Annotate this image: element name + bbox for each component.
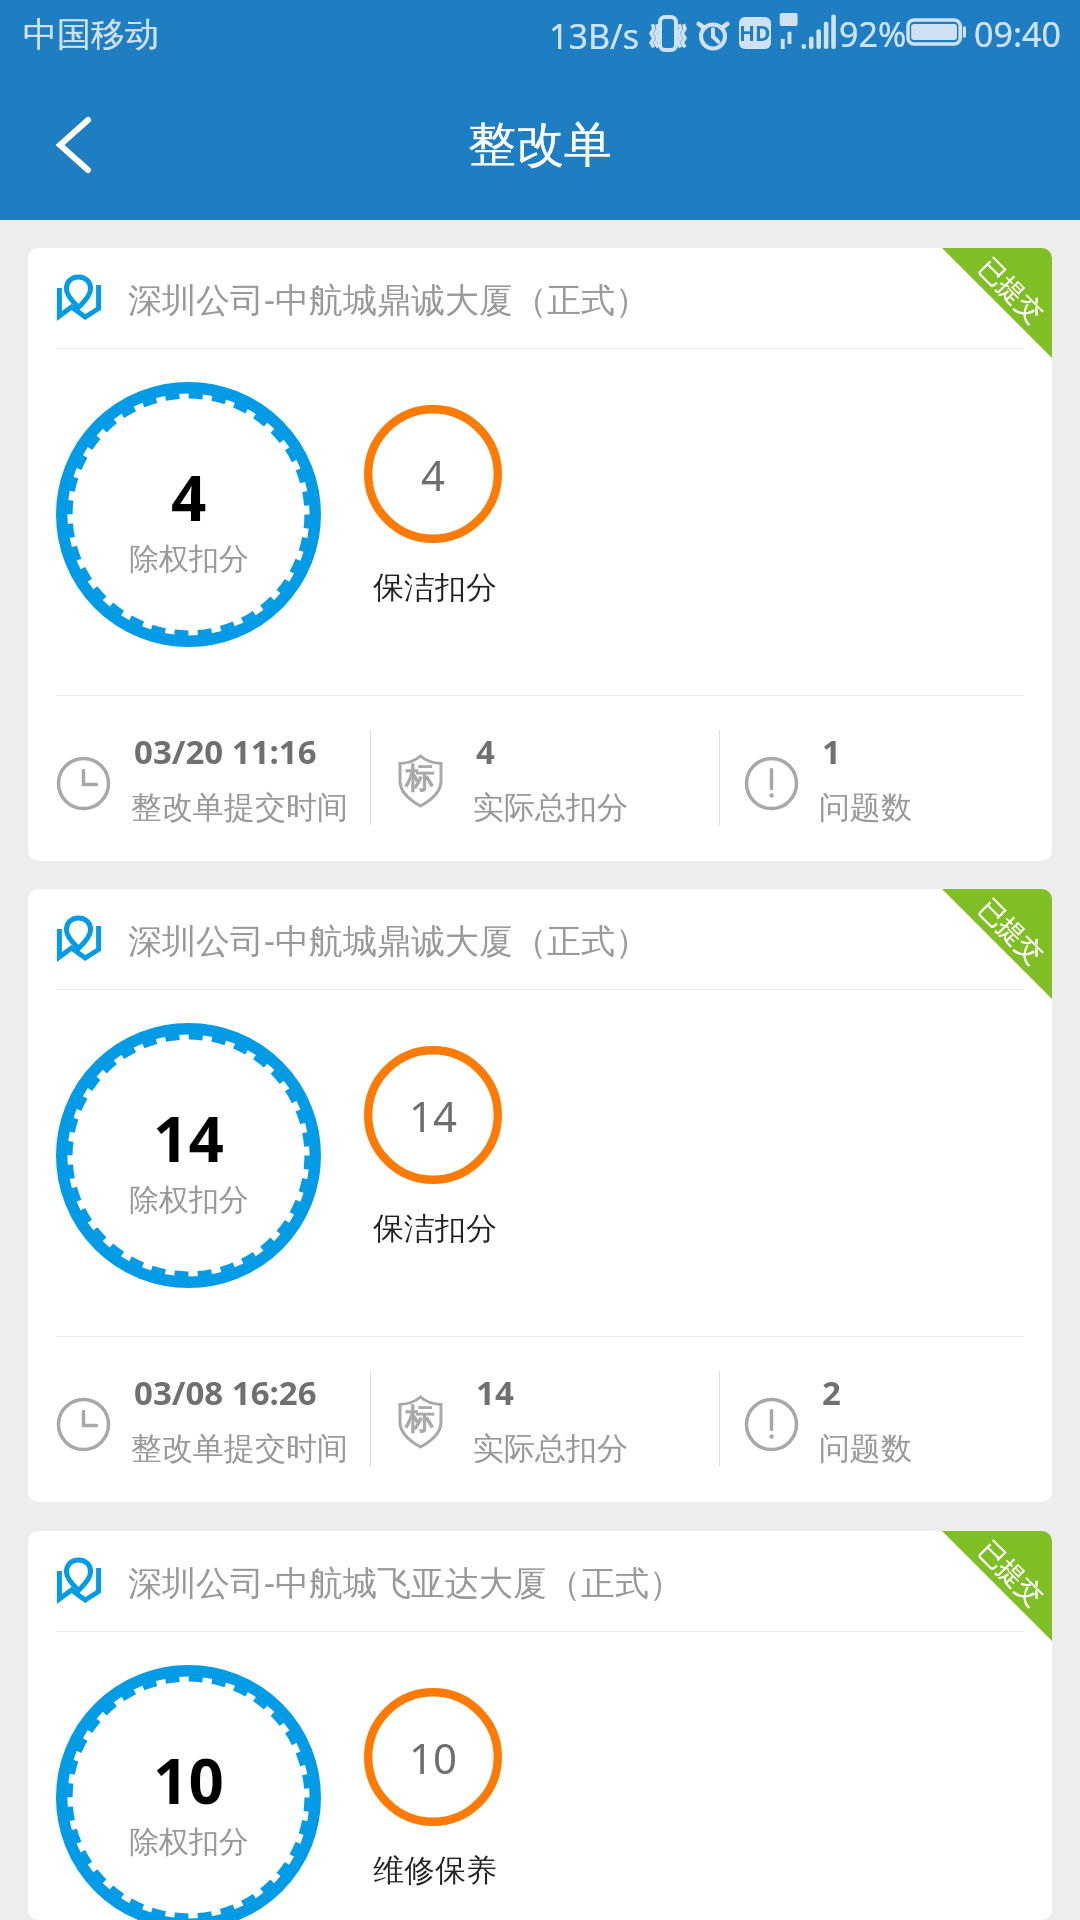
button[interactable]: 1 [716,725,1046,820]
staticText: 14 [409,1087,458,1144]
staticText: 整改单 [468,115,612,175]
staticText: 4 [171,455,207,539]
staticText: 中国移动 [23,13,159,56]
staticText: 已提交 [972,1534,1050,1613]
staticText: 实际总扣分 [473,1429,628,1468]
staticText: 问题数 [819,1429,912,1468]
staticText: 92% [839,11,907,57]
staticText: 保洁扣分 [373,568,497,607]
staticText: 标 [405,1401,434,1438]
staticText: 09:40 [974,11,1061,57]
staticText: 1 [822,729,841,774]
button[interactable]: 03/08 16:26 [28,1366,358,1461]
button[interactable]: 03/20 11:16 [28,725,358,820]
staticText: 维修保养 [373,1851,497,1890]
staticText: 03/08 16:26 [134,1370,317,1415]
button[interactable]: 2 [716,1366,1046,1461]
staticText: 2 [822,1370,841,1415]
staticText: 03/20 11:16 [134,729,317,774]
staticText: 整改单提交时间 [131,788,348,827]
staticText: HD [739,19,771,48]
staticText: 14 [153,1096,224,1180]
staticText: 4 [476,729,495,774]
staticText: 已提交 [972,251,1050,330]
staticText: 10 [153,1738,224,1822]
staticText: 10 [409,1729,458,1786]
button[interactable]: 标 [370,725,700,820]
button[interactable]: Back [26,101,114,189]
button[interactable]: 深圳公司-中航城鼎诚大厦（正式） [28,248,1052,861]
button[interactable]: 标 [370,1366,700,1461]
staticText: 保洁扣分 [373,1209,497,1248]
button[interactable]: 深圳公司-中航城鼎诚大厦（正式） [28,889,1052,1502]
staticText: 整改单提交时间 [131,1429,348,1468]
staticText: 已提交 [972,892,1050,971]
staticText: 深圳公司-中航城飞亚达大厦（正式） [128,1559,683,1605]
staticText: 标 [405,760,434,797]
staticText: 深圳公司-中航城鼎诚大厦（正式） [128,917,649,963]
staticText: 4 [421,446,446,503]
button[interactable]: 深圳公司-中航城飞亚达大厦（正式） [28,1531,1052,1920]
staticText: 实际总扣分 [473,788,628,827]
staticText: 除权扣分 [129,540,249,578]
staticText: 13B/s [549,13,639,59]
staticText: 除权扣分 [129,1181,249,1219]
staticText: 除权扣分 [129,1823,249,1861]
staticText: 14 [476,1370,514,1415]
staticText: 问题数 [819,788,912,827]
staticText: 深圳公司-中航城鼎诚大厦（正式） [128,276,649,322]
